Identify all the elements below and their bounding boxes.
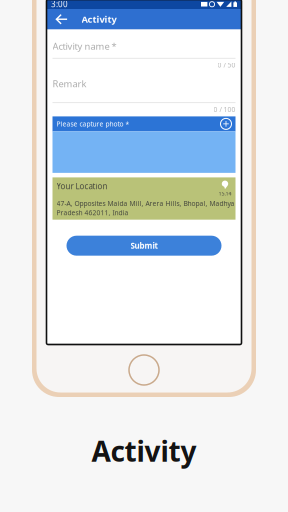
staticText: Please capture photo *	[56, 119, 129, 128]
staticText: Your Location	[56, 181, 107, 191]
button[interactable]: Submit	[66, 236, 221, 256]
button[interactable]: Please capture photo *	[52, 116, 235, 131]
staticText: 47-A, Opposites Maida Mill, Arera Hills,…	[56, 199, 234, 208]
staticText: 3:00	[51, 0, 68, 9]
staticText: Pradesh 462011, India	[56, 208, 128, 217]
staticText: Activity	[81, 13, 116, 25]
staticText: Remark	[52, 77, 86, 90]
staticText: Submit	[130, 240, 157, 251]
button[interactable]: Back	[49, 9, 72, 29]
staticText: 0 / 100	[213, 105, 235, 114]
staticText: 15.14	[218, 190, 231, 197]
staticText: 0 / 50	[217, 61, 235, 69]
staticText: Activity	[91, 432, 196, 470]
staticText: Activity name *	[52, 40, 116, 52]
